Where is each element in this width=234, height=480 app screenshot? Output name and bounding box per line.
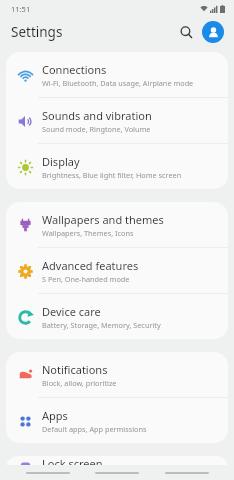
button[interactable]: Notifications	[6, 352, 228, 397]
staticText: Connections	[42, 62, 107, 77]
button[interactable]: Display	[6, 144, 228, 189]
staticText: Block, allow, prioritize	[42, 378, 117, 388]
staticText: Wallpapers and themes	[42, 212, 164, 227]
staticText: Wallpapers, Themes, Icons	[42, 228, 134, 238]
staticText: S Pen, One-handed mode	[42, 274, 130, 284]
button[interactable]: Account	[202, 21, 224, 43]
button[interactable]: Search	[174, 20, 198, 44]
staticText: Brightness, Blue light filter, Home scre…	[42, 170, 182, 180]
staticText: Apps	[42, 408, 68, 423]
staticText: Device care	[42, 304, 101, 319]
staticText: Wi-Fi, Bluetooth, Data usage, Airplane m…	[42, 78, 194, 88]
button[interactable]: Advanced features	[6, 248, 228, 293]
staticText: 11:51	[11, 4, 31, 14]
button[interactable]: Device care	[6, 294, 228, 339]
staticText: Sound mode, Ringtone, Volume	[42, 124, 151, 134]
button[interactable]: Connections	[6, 52, 228, 97]
staticText: Screen lock type, Always On Display, Clo…	[42, 472, 204, 480]
button[interactable]: Sounds and vibration	[6, 98, 228, 143]
staticText: Lock screen	[42, 456, 103, 471]
staticText: Sounds and vibration	[42, 108, 152, 123]
staticText: Display	[42, 154, 80, 169]
staticText: Settings	[11, 23, 63, 41]
staticText: Notifications	[42, 362, 108, 377]
button[interactable]: Apps	[6, 398, 228, 443]
button[interactable]: Wallpapers and themes	[6, 202, 228, 247]
staticText: Default apps, App permissions	[42, 424, 147, 434]
staticText: Advanced features	[42, 258, 139, 273]
staticText: Battery, Storage, Memory, Security	[42, 320, 161, 330]
button[interactable]: Lock screen	[6, 456, 228, 480]
